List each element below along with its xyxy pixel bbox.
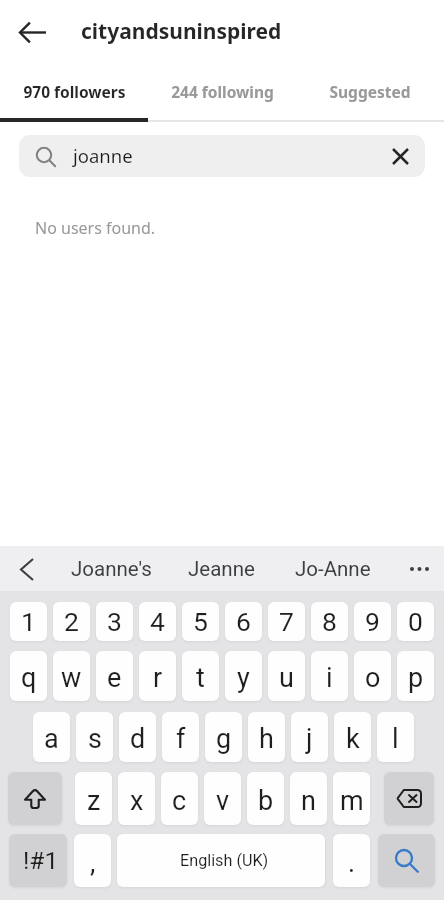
- button[interactable]: 5: [182, 602, 219, 641]
- button[interactable]: Backspace: [384, 772, 434, 825]
- staticText: p: [408, 662, 424, 694]
- staticText: !#1: [23, 846, 59, 875]
- staticText: 7: [279, 606, 294, 637]
- staticText: d: [130, 723, 146, 755]
- button[interactable]: o: [354, 651, 391, 701]
- button[interactable]: English (UK): [117, 834, 325, 887]
- button[interactable]: q: [10, 651, 47, 701]
- staticText: English (UK): [180, 851, 269, 870]
- staticText: k: [346, 723, 360, 755]
- staticText: b: [258, 785, 274, 817]
- button[interactable]: 2: [53, 602, 90, 641]
- staticText: j: [306, 723, 313, 755]
- button[interactable]: 970 followers: [0, 65, 148, 118]
- staticText: o: [365, 662, 381, 694]
- staticText: v: [216, 785, 230, 817]
- button[interactable]: 244 following: [148, 65, 296, 118]
- staticText: Joanne's: [71, 557, 152, 581]
- button[interactable]: s: [76, 712, 113, 762]
- button[interactable]: 8: [311, 602, 348, 641]
- button[interactable]: z: [75, 772, 112, 825]
- button[interactable]: j: [291, 712, 328, 762]
- staticText: 2: [64, 606, 79, 637]
- staticText: .: [348, 847, 356, 879]
- staticText: l: [392, 723, 399, 755]
- staticText: 4: [150, 606, 165, 637]
- button[interactable]: Search: [378, 834, 435, 887]
- button[interactable]: h: [248, 712, 285, 762]
- staticText: n: [301, 785, 316, 817]
- staticText: z: [87, 785, 101, 817]
- staticText: 970 followers: [23, 81, 126, 102]
- button[interactable]: Jeanne: [172, 546, 271, 591]
- staticText: q: [21, 662, 37, 694]
- staticText: cityandsuninspired: [81, 17, 282, 46]
- staticText: h: [259, 723, 274, 755]
- staticText: y: [237, 662, 250, 694]
- button[interactable]: i: [311, 651, 348, 701]
- button[interactable]: ,: [74, 834, 111, 887]
- staticText: g: [216, 723, 232, 755]
- staticText: w: [61, 662, 82, 694]
- button[interactable]: Clear: [379, 135, 421, 177]
- staticText: 5: [193, 606, 208, 637]
- button[interactable]: Suggested: [296, 65, 444, 118]
- button[interactable]: g: [205, 712, 242, 762]
- button[interactable]: Previous suggestions: [9, 551, 45, 587]
- button[interactable]: 4: [139, 602, 176, 641]
- staticText: Suggested: [329, 81, 411, 102]
- button[interactable]: More options: [400, 550, 438, 588]
- button[interactable]: Shift: [8, 772, 62, 825]
- staticText: 8: [322, 606, 337, 637]
- staticText: 9: [365, 606, 380, 637]
- button[interactable]: 6: [225, 602, 262, 641]
- button[interactable]: x: [118, 772, 155, 825]
- button[interactable]: w: [53, 651, 90, 701]
- button[interactable]: p: [397, 651, 434, 701]
- button[interactable]: k: [334, 712, 371, 762]
- button[interactable]: f: [162, 712, 199, 762]
- staticText: i: [326, 662, 333, 694]
- button[interactable]: d: [119, 712, 156, 762]
- button[interactable]: u: [268, 651, 305, 701]
- button[interactable]: y: [225, 651, 262, 701]
- button[interactable]: !#1: [9, 834, 67, 887]
- button[interactable]: .: [333, 834, 370, 887]
- button[interactable]: t: [182, 651, 219, 701]
- staticText: 244 following: [171, 81, 274, 102]
- button[interactable]: joanne: [19, 135, 425, 177]
- button[interactable]: 9: [354, 602, 391, 641]
- button[interactable]: e: [96, 651, 133, 701]
- button[interactable]: 3: [96, 602, 133, 641]
- button[interactable]: b: [247, 772, 284, 825]
- staticText: 6: [236, 606, 251, 637]
- button[interactable]: Joanne's: [55, 546, 168, 591]
- staticText: Jo-Anne: [295, 557, 371, 581]
- button[interactable]: c: [161, 772, 198, 825]
- staticText: 3: [107, 606, 122, 637]
- button[interactable]: 0: [397, 602, 434, 641]
- staticText: ,: [90, 847, 96, 879]
- button[interactable]: Back: [12, 12, 53, 53]
- staticText: r: [153, 662, 163, 694]
- staticText: m: [340, 785, 364, 817]
- staticText: c: [172, 785, 187, 817]
- staticText: u: [279, 662, 294, 694]
- staticText: e: [107, 662, 122, 694]
- button[interactable]: a: [33, 712, 70, 762]
- button[interactable]: 1: [10, 602, 47, 641]
- staticText: No users found.: [35, 217, 156, 239]
- staticText: x: [130, 785, 144, 817]
- button[interactable]: 7: [268, 602, 305, 641]
- button[interactable]: l: [377, 712, 414, 762]
- staticText: 0: [408, 606, 423, 637]
- button[interactable]: r: [139, 651, 176, 701]
- button[interactable]: m: [333, 772, 370, 825]
- staticText: Jeanne: [188, 557, 255, 581]
- staticText: 1: [21, 606, 36, 637]
- staticText: t: [196, 662, 205, 694]
- button[interactable]: Jo-Anne: [279, 546, 387, 591]
- button[interactable]: v: [204, 772, 241, 825]
- button[interactable]: n: [290, 772, 327, 825]
- staticText: s: [88, 723, 102, 755]
